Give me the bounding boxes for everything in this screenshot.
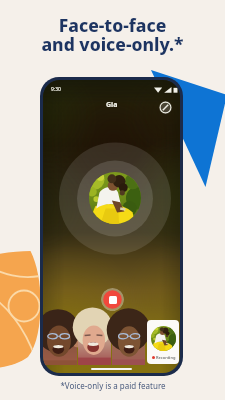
staticText: Gia	[106, 100, 118, 110]
button[interactable]	[112, 319, 145, 365]
button[interactable]: Recording	[147, 320, 179, 364]
staticText: 9:30	[51, 86, 61, 93]
staticText: Recording	[155, 355, 176, 360]
button[interactable]: Stop recording	[101, 288, 124, 311]
button[interactable]: Camera off	[159, 101, 172, 114]
staticText: *Voice-only is a paid feature	[60, 380, 166, 391]
button[interactable]	[78, 319, 111, 365]
staticText: Face-to-face and voice-only.*	[41, 13, 184, 56]
button[interactable]	[43, 319, 77, 365]
